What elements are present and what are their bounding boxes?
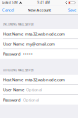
staticText: ••••• [23,51,33,57]
button[interactable]: Cancel [0,5,16,14]
staticText: mta-32.wsbnode.com [25,31,65,36]
button[interactable]: Password [0,95,78,105]
button[interactable]: Save [66,5,78,14]
staticText: my@email.com [26,41,55,47]
staticText: INCOMING MAIL SERVER [3,23,34,26]
staticText: mta-32.wsbnode.com [25,77,65,82]
staticText: Password [3,97,21,102]
staticText: User Name [3,87,24,92]
button[interactable]: User Name [0,39,78,49]
staticText: Host Name [3,31,23,36]
button[interactable]: User Name [0,85,78,94]
staticText: Locked SIM [2,1,18,5]
staticText: Host Name [3,77,23,82]
staticText: Password [3,51,21,57]
staticText: Cancel [2,7,14,13]
button[interactable]: Password [0,49,78,59]
staticText: 9:41 AM [37,1,50,5]
staticText: Save [68,7,76,13]
button[interactable]: Host Name [0,29,78,39]
staticText: New Account [27,7,50,13]
staticText: OUTGOING MAIL SERVER [3,69,34,72]
button[interactable]: Host Name [0,75,78,84]
staticText: User Name [3,41,24,47]
staticText: Optional [26,87,42,92]
staticText: Optional [23,97,39,102]
